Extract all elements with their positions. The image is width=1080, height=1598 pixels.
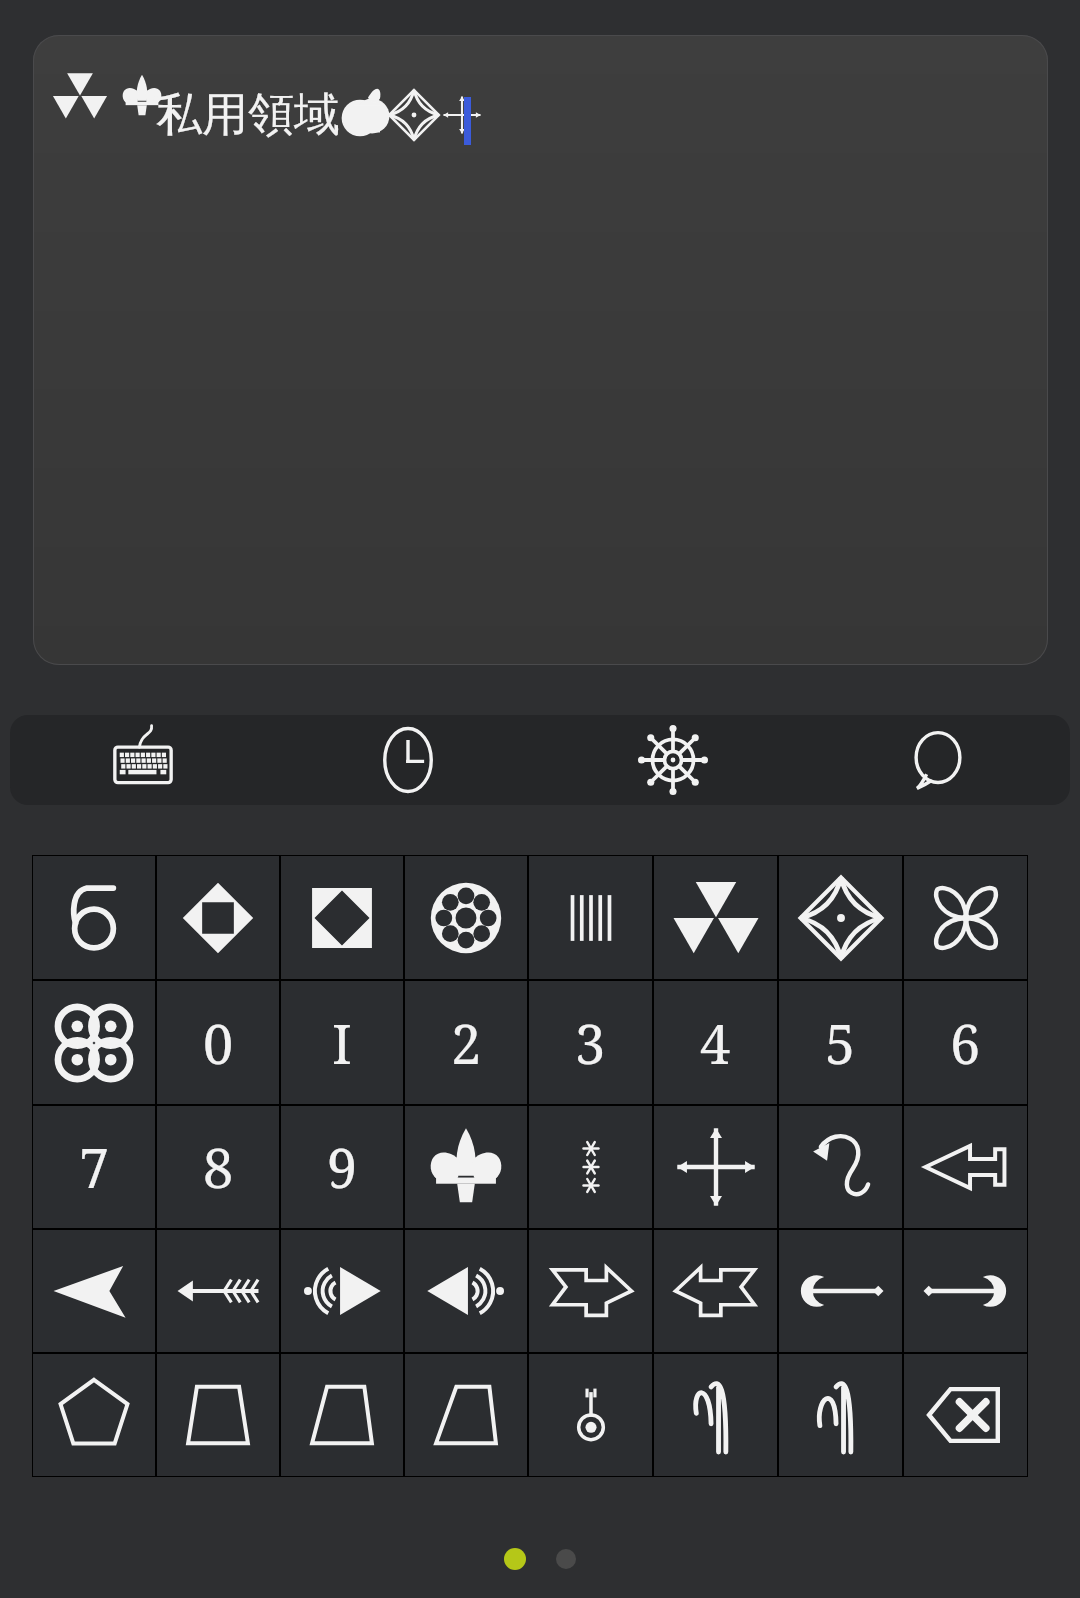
button[interactable]: bannerleft	[529, 1230, 652, 1352]
staticText: I	[332, 1006, 352, 1080]
button[interactable]: fourpetal	[904, 856, 1027, 979]
button[interactable]: crescentright	[904, 1230, 1027, 1352]
button[interactable]: I	[281, 981, 403, 1104]
button[interactable]: stealth	[33, 1230, 155, 1352]
staticText: 私用領域	[156, 86, 340, 144]
staticText: 4	[700, 1006, 731, 1080]
button[interactable]: hook	[779, 1106, 902, 1228]
button[interactable]: move	[654, 1106, 777, 1228]
button[interactable]: bannerright	[654, 1230, 777, 1352]
button[interactable]: 0	[157, 981, 279, 1104]
button[interactable]: cluster	[405, 856, 527, 979]
staticText: 2	[451, 1006, 482, 1080]
button[interactable]: backspace	[904, 1354, 1027, 1476]
button[interactable]: tallm	[654, 1354, 777, 1476]
button[interactable]: trap3	[405, 1354, 527, 1476]
button[interactable]: 2	[405, 981, 527, 1104]
staticText: 8	[203, 1130, 234, 1204]
button[interactable]: diamondsq	[157, 856, 279, 979]
button[interactable]: trap1	[157, 1354, 279, 1476]
button[interactable]: tallm2	[779, 1354, 902, 1476]
button[interactable]: fleur	[405, 1106, 527, 1228]
button[interactable]: 4	[654, 981, 777, 1104]
button[interactable]: sqdiamond	[281, 856, 403, 979]
button[interactable]: Messages	[805, 715, 1070, 805]
button[interactable]: 5	[779, 981, 902, 1104]
button[interactable]: Clock	[275, 715, 540, 805]
button[interactable]: asterisks	[529, 1106, 652, 1228]
button[interactable]: waveleft	[281, 1230, 403, 1352]
staticText: 7	[79, 1130, 110, 1204]
button[interactable]: tally	[529, 856, 652, 979]
button[interactable]: Page 1	[504, 1548, 526, 1570]
button[interactable]: 6	[904, 981, 1027, 1104]
button[interactable]: 7	[33, 1106, 155, 1228]
button[interactable]: pendant	[529, 1354, 652, 1476]
staticText: 3	[575, 1006, 606, 1080]
staticText: 5	[825, 1006, 856, 1080]
button[interactable]: 3	[529, 981, 652, 1104]
button[interactable]: Page 2	[556, 1549, 576, 1569]
button[interactable]: waveright	[405, 1230, 527, 1352]
button[interactable]: bararrow	[904, 1106, 1027, 1228]
button[interactable]: Keyboard	[10, 715, 275, 805]
staticText: 6	[950, 1006, 981, 1080]
button[interactable]: Symbols	[540, 715, 805, 805]
button[interactable]: trap2	[281, 1354, 403, 1476]
staticText: 9	[327, 1130, 358, 1204]
button[interactable]: starknot	[779, 856, 902, 979]
button[interactable]: feather	[157, 1230, 279, 1352]
button[interactable]: fourrings	[33, 981, 155, 1104]
button[interactable]: crescentleft	[779, 1230, 902, 1352]
button[interactable]: tritrefoil	[654, 856, 777, 979]
button[interactable]: pentagon	[33, 1354, 155, 1476]
staticText: 0	[203, 1006, 234, 1080]
button[interactable]: 8	[157, 1106, 279, 1228]
button[interactable]: softb	[33, 856, 155, 979]
button[interactable]: 9	[281, 1106, 403, 1228]
button[interactable]: 私用領域	[33, 35, 1048, 665]
